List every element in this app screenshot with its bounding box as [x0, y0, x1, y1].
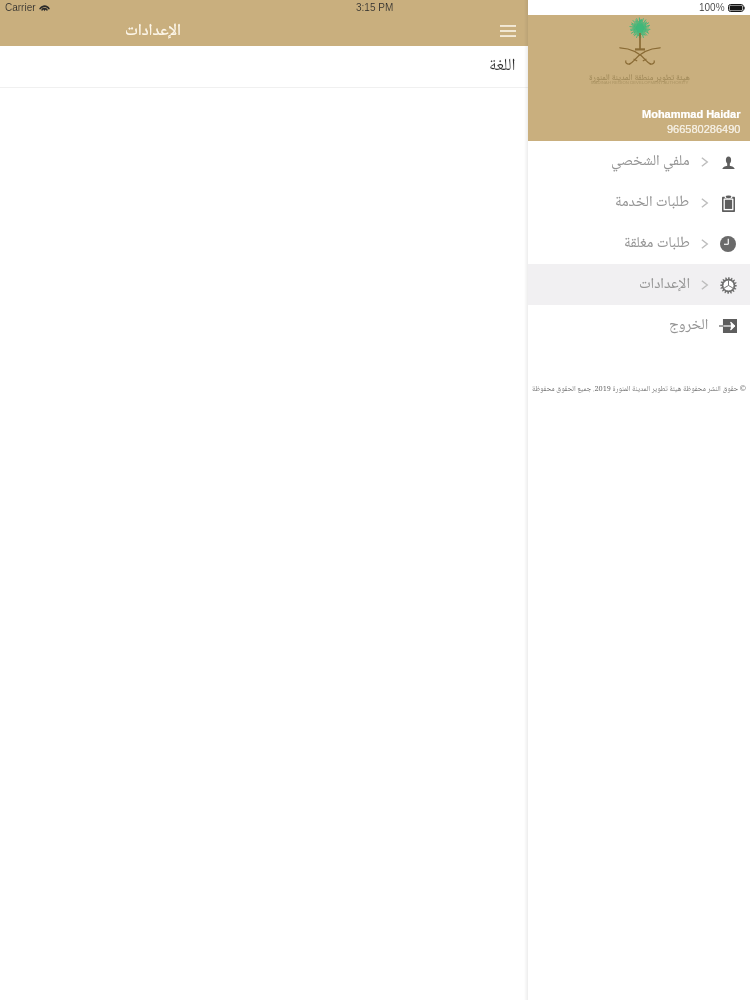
staticText: هيئة تطوير منطقة المدينة المنورة — [589, 71, 690, 86]
staticText: 100% — [699, 2, 725, 13]
staticText: 966580286490 — [667, 123, 741, 135]
staticText: MADINAH REGION DEVELOPMENT AUTHORITY — [591, 80, 689, 85]
staticText: الخروج — [669, 313, 709, 339]
button[interactable]: Service requests — [528, 182, 750, 223]
button[interactable]: Settings — [528, 264, 750, 305]
staticText: اللغة — [489, 52, 516, 81]
staticText: Mohammad Haidar — [642, 108, 741, 120]
button[interactable]: Logout — [528, 305, 750, 346]
button[interactable]: Profile — [528, 141, 750, 182]
button[interactable]: Open navigation menu — [492, 16, 524, 46]
staticText: ملفي الشخصي — [611, 149, 690, 175]
staticText: الإعدادات — [125, 17, 182, 45]
staticText: Carrier — [5, 2, 36, 13]
staticText: 3:15 PM — [356, 2, 394, 13]
staticText: طلبات مغلقة — [624, 231, 690, 257]
staticText: طلبات الخدمة — [615, 190, 690, 216]
staticText: © حقوق النشر محفوظة هيئة تطوير المدينة ا… — [528, 383, 750, 396]
staticText: الإعدادات — [639, 272, 690, 298]
button[interactable]: Closed requests — [528, 223, 750, 264]
button[interactable]: اللغة — [0, 46, 750, 87]
